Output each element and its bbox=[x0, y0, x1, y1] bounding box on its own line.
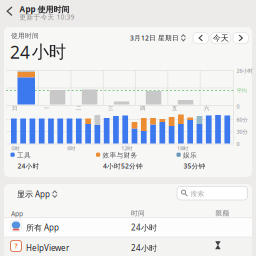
button[interactable]: 所有 App bbox=[4, 217, 252, 237]
staticText: 18时 bbox=[177, 145, 188, 152]
button[interactable]: 今天 bbox=[211, 32, 230, 43]
staticText: App 使用时间 bbox=[19, 4, 69, 14]
staticText: 四 bbox=[140, 105, 145, 112]
staticText: 0 bbox=[236, 140, 239, 148]
staticText: 限额 bbox=[215, 209, 229, 217]
staticText: 0时 bbox=[11, 145, 19, 152]
staticText: HelpViewer bbox=[26, 243, 69, 253]
staticText: 所有 App bbox=[26, 222, 59, 233]
staticText: ? bbox=[14, 242, 17, 250]
staticText: 时间 bbox=[131, 209, 145, 217]
staticText: 二 bbox=[76, 105, 81, 112]
staticText: 一 bbox=[44, 105, 49, 112]
staticText: 今天 bbox=[213, 33, 229, 43]
staticText: 30分 bbox=[236, 128, 247, 135]
staticText: 24 bbox=[10, 40, 30, 63]
staticText: 0 bbox=[236, 103, 239, 110]
staticText: 3月12日 星期日 bbox=[130, 33, 179, 42]
button[interactable]: 搜索 bbox=[177, 186, 247, 200]
staticText: 35分钟 bbox=[183, 161, 205, 170]
staticText: 12时 bbox=[121, 145, 132, 152]
staticText: App bbox=[11, 209, 23, 218]
button[interactable]: 后一天 bbox=[233, 32, 248, 43]
staticText: 60分 bbox=[236, 116, 247, 123]
staticText: 五 bbox=[172, 105, 177, 112]
staticText: 24小时 bbox=[17, 161, 39, 170]
button[interactable]: 前一天 bbox=[193, 32, 208, 43]
staticText: 三 bbox=[108, 105, 113, 112]
button[interactable]: Back bbox=[4, 4, 15, 18]
staticText: 平均 bbox=[236, 87, 246, 94]
staticText: 工具 bbox=[17, 151, 31, 159]
staticText: 使用时间 bbox=[11, 32, 39, 40]
button[interactable]: 选择日期 bbox=[130, 33, 185, 42]
staticText: 搜索 bbox=[190, 190, 204, 198]
staticText: 六 bbox=[204, 105, 209, 112]
staticText: 娱乐 bbox=[183, 151, 197, 159]
staticText: 6时 bbox=[67, 145, 75, 152]
staticText: 效率与财务 bbox=[102, 151, 137, 159]
staticText: 24小时 bbox=[131, 243, 157, 253]
button[interactable]: ? bbox=[4, 237, 252, 256]
staticText: 26小时 bbox=[236, 67, 252, 74]
staticText: 日 bbox=[12, 105, 17, 112]
staticText: 更新于今天 10:39 bbox=[19, 13, 74, 21]
staticText: 4小时52分钟 bbox=[103, 161, 143, 170]
staticText: 小时 bbox=[32, 41, 66, 63]
button[interactable]: 显示 App bbox=[17, 189, 57, 199]
staticText: 显示 App bbox=[17, 189, 50, 199]
staticText: 24小时 bbox=[131, 222, 157, 233]
